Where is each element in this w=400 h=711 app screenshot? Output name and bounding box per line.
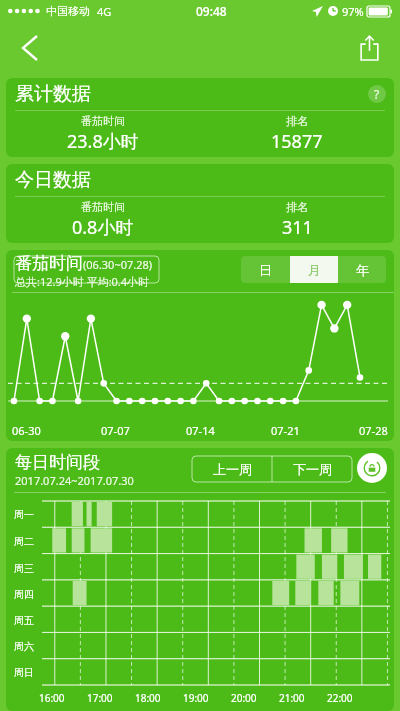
staticText: 排名	[286, 200, 308, 214]
staticText: (06.30~07.28)	[83, 257, 153, 272]
staticText: 07-28	[359, 423, 388, 438]
staticText: 月	[308, 262, 321, 278]
button[interactable]: Back	[8, 26, 52, 70]
staticText: 17:00	[87, 691, 113, 705]
staticText: 16:00	[39, 691, 65, 705]
staticText: 07-21	[271, 423, 300, 438]
staticText: 21:00	[279, 691, 305, 705]
staticText: 番茄时间	[81, 114, 125, 128]
staticText: 0.8小时	[72, 215, 134, 240]
staticText: ?	[374, 86, 380, 102]
staticText: 年	[356, 262, 369, 278]
staticText: 周六	[14, 640, 34, 653]
button[interactable]: 今日数据	[6, 164, 394, 243]
staticText: 2017.07.24~2017.07.30	[15, 473, 134, 488]
staticText: 07-07	[101, 423, 130, 438]
staticText: 07-14	[186, 423, 215, 438]
staticText: 09:48	[196, 3, 227, 19]
staticText: 番茄时间	[15, 253, 83, 274]
staticText: 周四	[14, 588, 34, 601]
button[interactable]: Help	[368, 85, 386, 103]
staticText: 累计数据	[15, 82, 91, 106]
staticText: 周五	[14, 614, 34, 627]
staticText: 19:00	[183, 691, 209, 705]
staticText: 番茄时间	[81, 200, 125, 214]
staticText: 周日	[14, 666, 34, 679]
staticText: 周二	[14, 535, 34, 548]
button[interactable]: 日	[241, 256, 290, 283]
staticText: 总共:12.9小时 平均:0.4小时	[15, 274, 150, 289]
staticText: 97%	[342, 4, 364, 19]
staticText: 中国移动	[46, 4, 90, 18]
button[interactable]: 下一周	[272, 456, 352, 482]
staticText: 周三	[14, 562, 34, 575]
staticText: 4G	[97, 4, 112, 19]
button[interactable]: 上一周	[192, 456, 272, 482]
button[interactable]: Share	[348, 27, 390, 69]
staticText: 每日时间段	[15, 452, 100, 473]
staticText: 排名	[286, 114, 308, 128]
button[interactable]: Lock rotation	[357, 453, 387, 483]
staticText: 23.8小时	[67, 129, 139, 154]
staticText: 上一周	[213, 461, 252, 477]
staticText: 22:00	[327, 691, 353, 705]
button[interactable]: 累计数据	[6, 78, 394, 157]
staticText: 20:00	[231, 691, 257, 705]
staticText: 今日数据	[15, 168, 91, 192]
staticText: 18:00	[135, 691, 161, 705]
staticText: 日	[259, 262, 272, 278]
staticText: 周一	[14, 508, 34, 521]
button[interactable]: 年	[338, 256, 386, 283]
staticText: 311	[282, 215, 313, 240]
button[interactable]: 月	[290, 256, 338, 283]
staticText: 06-30	[12, 423, 41, 438]
staticText: 15877	[271, 129, 323, 154]
staticText: 下一周	[293, 461, 332, 477]
